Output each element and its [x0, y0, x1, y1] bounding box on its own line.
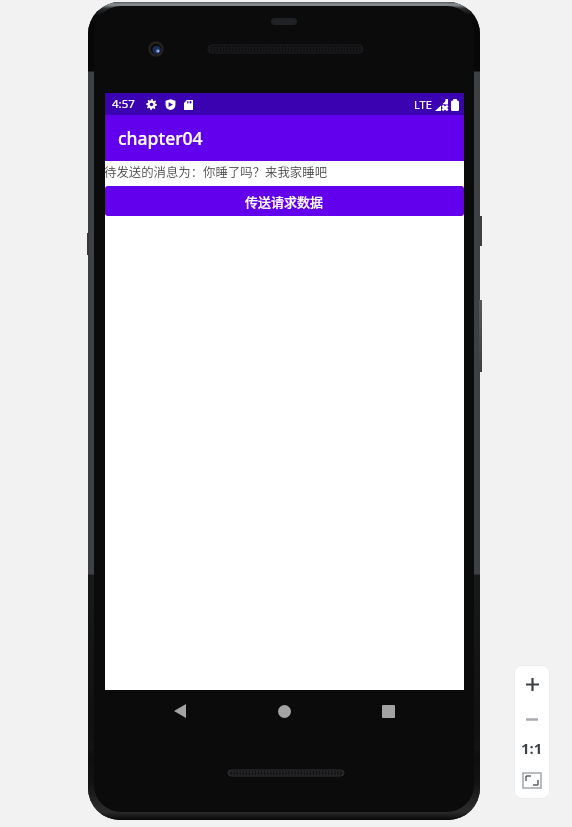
button[interactable]: Back: [162, 693, 198, 729]
button[interactable]: 传送请求数据: [105, 186, 464, 216]
staticText: chapter04: [118, 126, 203, 150]
button[interactable]: Zoom out: [514, 703, 550, 735]
staticText: 传送请求数据: [245, 192, 324, 211]
button[interactable]: Zoom in: [514, 665, 550, 703]
button[interactable]: Home: [266, 693, 302, 729]
button[interactable]: Fit to window: [514, 768, 550, 799]
button[interactable]: Recent apps: [370, 693, 406, 729]
staticText: 4:57: [112, 96, 135, 112]
staticText: LTE: [414, 97, 432, 112]
staticText: 待发送的消息为：你睡了吗？来我家睡吧: [104, 163, 328, 181]
staticText: 1:1: [521, 738, 543, 758]
button[interactable]: Actual size: [514, 735, 550, 768]
